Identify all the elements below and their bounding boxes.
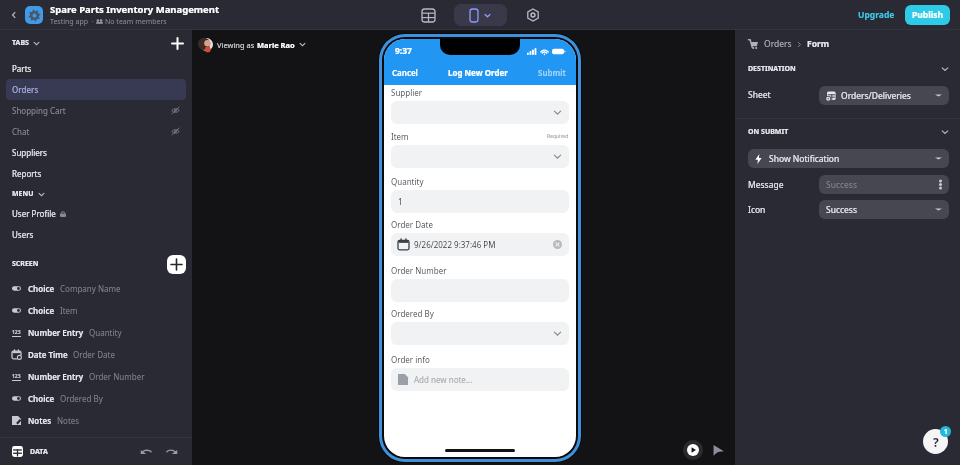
staticText: Success <box>826 204 858 216</box>
button[interactable]: Chat <box>6 121 186 142</box>
staticText: Item <box>391 131 409 142</box>
staticText: Testing app · <box>50 17 96 27</box>
button[interactable]: Add tab <box>168 34 186 52</box>
button[interactable]: User Profile <box>6 203 186 224</box>
staticText: Show Notification <box>769 153 840 165</box>
staticText: 1 <box>398 196 403 207</box>
staticText: Ordered By <box>60 393 103 404</box>
button[interactable]: TABS <box>12 38 40 48</box>
staticText: Publish <box>912 9 944 21</box>
staticText: Supplier <box>391 87 423 98</box>
button[interactable]: Date Time <box>0 343 192 365</box>
staticText: Icon <box>748 204 766 216</box>
button[interactable]: Select tool <box>710 442 726 458</box>
button[interactable]: Help <box>923 429 948 454</box>
staticText: Company Name <box>60 283 121 294</box>
staticText: Spare Parts Inventory Management <box>50 3 220 16</box>
button[interactable]: Choice <box>0 299 192 321</box>
button[interactable]: Orders <box>6 79 186 100</box>
staticText: User Profile <box>12 208 56 219</box>
button[interactable]: Add new note... <box>391 368 569 391</box>
staticText: SCREEN <box>12 259 39 269</box>
staticText: Order info <box>391 354 430 365</box>
button[interactable]: Shopping Cart <box>6 100 186 121</box>
staticText: Orders <box>12 84 39 95</box>
button[interactable] <box>454 4 507 26</box>
button[interactable]: Success <box>819 200 949 219</box>
staticText: Submit <box>538 67 566 78</box>
staticText: Success <box>826 179 858 191</box>
staticText: Number Entry <box>28 327 84 338</box>
button[interactable]: Orders/Deliveries <box>819 86 949 105</box>
button[interactable]: 1 <box>391 190 569 213</box>
staticText: Choice <box>28 283 55 294</box>
button[interactable]: Settings <box>521 3 545 27</box>
staticText: Quantity <box>89 327 122 338</box>
button[interactable]: Add component <box>167 255 186 274</box>
staticText: 9:37 <box>395 45 412 57</box>
button[interactable]: 9/26/2022 9:37:46 PM <box>391 233 569 256</box>
staticText: Date Time <box>28 349 68 360</box>
staticText: Cancel <box>392 67 418 78</box>
button[interactable]: Cancel <box>392 67 418 78</box>
staticText: Chat <box>12 126 30 137</box>
button[interactable]: Show Notification <box>748 149 949 168</box>
staticText: ? <box>933 434 939 450</box>
button[interactable]: DATA <box>12 446 48 457</box>
staticText: DESTINATION <box>748 64 796 74</box>
button[interactable]: Back <box>5 6 23 24</box>
staticText: Choice <box>28 393 55 404</box>
staticText: Viewing as <box>217 40 257 50</box>
button[interactable]: Upgrade <box>854 5 899 25</box>
button[interactable]: DESTINATION <box>735 58 960 80</box>
staticText: Parts <box>12 63 32 74</box>
button[interactable]: Parts <box>6 58 186 79</box>
button[interactable]: 123 <box>0 321 192 343</box>
button[interactable]: Success <box>819 175 949 194</box>
staticText: Choice <box>28 305 55 316</box>
staticText: Item <box>60 305 78 316</box>
button[interactable]: Orders <box>764 38 792 50</box>
button[interactable]: ON SUBMIT <box>735 119 960 145</box>
button[interactable]: Data <box>416 3 440 27</box>
staticText: MENU <box>12 189 34 199</box>
button[interactable]: Users <box>6 224 186 245</box>
staticText: 9/26/2022 9:37:46 PM <box>414 239 496 250</box>
staticText: ON SUBMIT <box>748 127 789 137</box>
staticText: DATA <box>30 447 48 457</box>
staticText: Orders/Deliveries <box>841 90 911 102</box>
button[interactable]: Choice <box>0 387 192 409</box>
button[interactable]: Choice <box>0 277 192 299</box>
staticText: Order Number <box>89 371 145 382</box>
button[interactable]: Suppliers <box>6 142 186 163</box>
staticText: Number Entry <box>28 371 84 382</box>
button[interactable]: Notes <box>0 409 192 431</box>
button[interactable]: Reports <box>6 163 186 184</box>
staticText: Add new note... <box>414 374 473 385</box>
button[interactable] <box>391 322 569 345</box>
staticText: Suppliers <box>12 147 47 158</box>
button[interactable] <box>391 145 569 168</box>
button[interactable]: Viewing as <box>200 38 306 51</box>
staticText: 1 <box>944 427 948 436</box>
button[interactable]: Publish <box>905 5 950 25</box>
staticText: Orders <box>764 38 792 50</box>
staticText: Shopping Cart <box>12 105 66 116</box>
button[interactable]: Undo <box>138 444 154 460</box>
button[interactable]: MENU <box>12 189 45 199</box>
staticText: TABS <box>12 38 29 48</box>
staticText: 123 <box>12 373 21 380</box>
button[interactable]: 123 <box>0 365 192 387</box>
staticText: Message <box>748 179 784 191</box>
staticText: Ordered By <box>391 308 434 319</box>
button[interactable] <box>391 101 569 124</box>
staticText: No team members <box>105 17 167 27</box>
button[interactable]: Play preview <box>683 440 703 460</box>
button[interactable]: Redo <box>164 444 180 460</box>
staticText: Order Number <box>391 265 447 276</box>
staticText: Sheet <box>748 89 771 101</box>
staticText: Notes <box>28 415 52 426</box>
button[interactable]: Submit <box>538 67 566 78</box>
staticText: Reports <box>12 168 42 179</box>
